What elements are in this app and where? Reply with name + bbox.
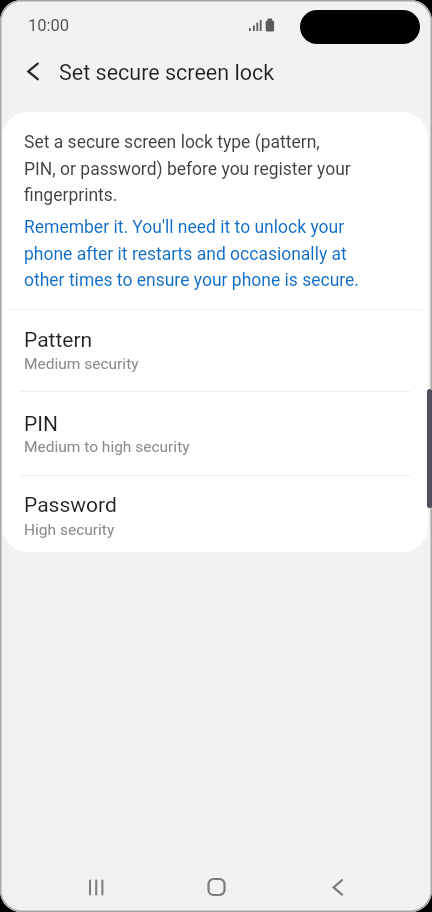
button[interactable]: Password [2,476,428,552]
button[interactable] [16,56,56,96]
staticText: Set secure screen lock [59,60,275,85]
staticText: Medium security [24,355,139,373]
button[interactable] [72,863,120,911]
staticText: Set a secure screen lock type (pattern, … [24,132,351,205]
staticText: High security [24,521,115,539]
button[interactable] [192,863,240,911]
button[interactable]: PIN [2,392,428,476]
staticText: Medium to high security [24,438,190,456]
staticText: 10:00 [28,16,70,35]
button[interactable]: Pattern [2,310,428,392]
button[interactable] [316,863,364,911]
staticText: Password [24,493,117,518]
staticText: Remember it. You'll need it to unlock yo… [24,217,359,290]
staticText: Pattern [24,328,93,353]
staticText: PIN [24,412,58,437]
